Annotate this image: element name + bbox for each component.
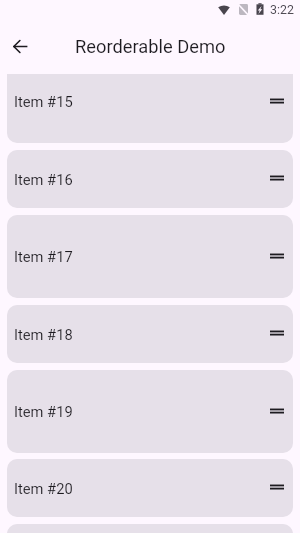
button[interactable]: Reorder item bbox=[267, 92, 287, 112]
button[interactable]: Item #18 bbox=[7, 305, 293, 363]
button[interactable]: Reorder item bbox=[267, 324, 287, 344]
staticText: Item #16 bbox=[14, 171, 73, 188]
staticText: Item #19 bbox=[14, 403, 73, 420]
button[interactable]: Item #17 bbox=[7, 215, 293, 298]
staticText: Item #20 bbox=[14, 480, 73, 497]
button[interactable]: Item #19 bbox=[7, 370, 293, 453]
staticText: Reorderable Demo bbox=[75, 36, 226, 57]
button[interactable]: Reorder item bbox=[267, 247, 287, 267]
button[interactable]: Item #15 bbox=[7, 74, 293, 143]
button[interactable]: Item #20 bbox=[7, 459, 293, 517]
button[interactable]: Reorder item bbox=[267, 402, 287, 422]
staticText: Item #18 bbox=[14, 326, 73, 343]
staticText: Item #17 bbox=[14, 248, 73, 265]
button[interactable]: Item #16 bbox=[7, 150, 293, 208]
button[interactable]: Item #21 bbox=[7, 524, 293, 533]
staticText: Item #15 bbox=[14, 93, 73, 110]
staticText: 3:22 bbox=[270, 2, 294, 17]
button[interactable]: Back bbox=[7, 33, 34, 60]
button[interactable]: Reorder item bbox=[267, 169, 287, 189]
button[interactable]: Reorder item bbox=[267, 478, 287, 498]
